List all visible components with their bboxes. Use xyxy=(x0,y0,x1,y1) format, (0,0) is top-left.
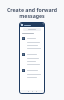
button[interactable] xyxy=(20,76,44,79)
other: Message xyxy=(22,37,25,40)
button[interactable] xyxy=(20,44,44,47)
staticText: Create and forward messages xyxy=(2,6,62,19)
button[interactable] xyxy=(20,90,44,93)
button[interactable]: Message xyxy=(20,68,44,73)
button[interactable] xyxy=(23,28,41,31)
other: Message xyxy=(22,53,25,56)
button[interactable] xyxy=(20,60,44,63)
button[interactable] xyxy=(20,47,44,50)
button[interactable] xyxy=(20,63,44,66)
button[interactable]: Message xyxy=(20,36,44,41)
button[interactable]: Message xyxy=(20,52,44,57)
button[interactable] xyxy=(20,57,44,60)
button[interactable] xyxy=(20,41,44,44)
other: Message xyxy=(22,69,25,72)
button[interactable] xyxy=(20,73,44,76)
button[interactable]: Message xyxy=(20,23,44,93)
